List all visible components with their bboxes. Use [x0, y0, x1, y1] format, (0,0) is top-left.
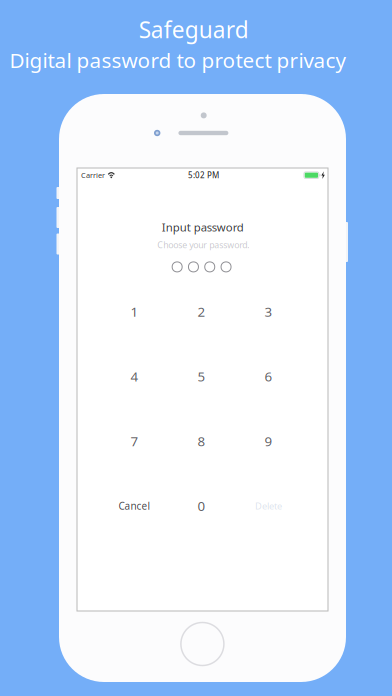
button[interactable]: 3 [235, 279, 302, 344]
button[interactable]: 6 [235, 344, 302, 409]
button[interactable]: 9 [235, 409, 302, 473]
staticText: 2 [197, 302, 205, 321]
staticText: 0 [197, 497, 205, 515]
button[interactable]: 7 [101, 409, 168, 473]
button[interactable]: 0 [168, 473, 235, 538]
staticText: 5:02 PM [188, 170, 219, 181]
staticText: Digital password to protect privacy [9, 46, 346, 74]
staticText: 9 [264, 432, 272, 450]
staticText: Choose your password. [157, 239, 249, 251]
staticText: 5 [197, 367, 205, 385]
button[interactable]: Cancel [101, 473, 168, 538]
button[interactable]: 8 [168, 409, 235, 473]
staticText: Cancel [118, 499, 150, 513]
staticText: 8 [197, 432, 205, 450]
button[interactable]: 2 [168, 279, 235, 344]
staticText: 3 [264, 302, 272, 321]
staticText: 1 [130, 302, 138, 321]
staticText: Safeguard [139, 14, 249, 45]
staticText: Input password [162, 219, 244, 235]
staticText: 4 [130, 367, 138, 385]
staticText: 7 [130, 432, 138, 450]
button[interactable]: 4 [101, 344, 168, 409]
staticText: Carrier [81, 170, 105, 180]
button[interactable]: 5 [168, 344, 235, 409]
staticText: 6 [264, 367, 272, 385]
staticText: Delete [255, 499, 282, 512]
button[interactable]: 1 [101, 279, 168, 344]
